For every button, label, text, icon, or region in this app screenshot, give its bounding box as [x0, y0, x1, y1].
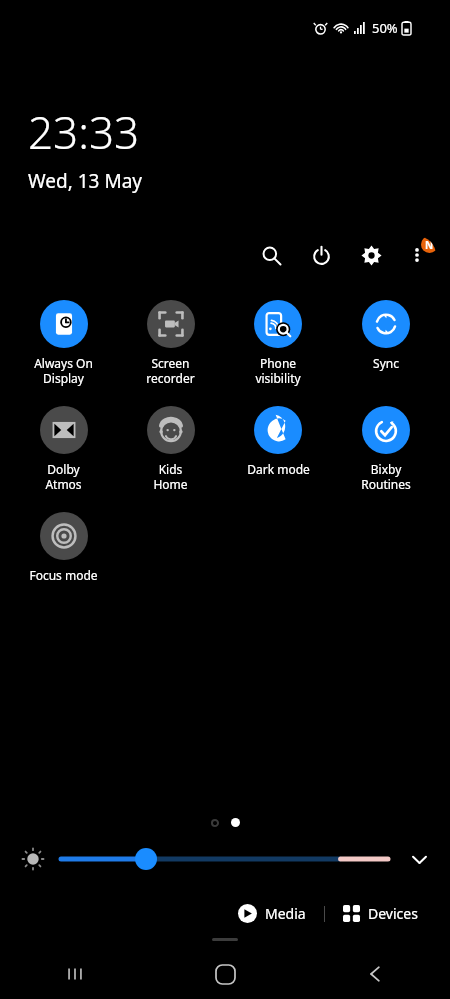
- button[interactable]: Search: [254, 238, 288, 272]
- staticText: 50%: [372, 19, 398, 37]
- button[interactable]: Focus mode: [10, 508, 117, 587]
- button[interactable]: Screen recorder: [117, 296, 224, 390]
- button[interactable]: Bixby Routines: [332, 402, 440, 496]
- button[interactable]: Phone visibility: [224, 296, 332, 390]
- staticText: Dark mode: [247, 461, 310, 477]
- staticText: Kids Home: [153, 461, 188, 492]
- button[interactable]: [61, 842, 388, 876]
- staticText: Dolby Atmos: [45, 461, 82, 492]
- staticText: Sync: [373, 355, 399, 371]
- staticText: Media: [265, 904, 306, 923]
- button[interactable]: Power: [304, 238, 338, 272]
- button[interactable]: Dolby Atmos: [10, 402, 117, 496]
- button[interactable]: Home: [150, 949, 300, 999]
- staticText: 23:33: [28, 102, 140, 162]
- staticText: Phone visibility: [255, 355, 301, 386]
- button[interactable]: Sync: [332, 296, 440, 375]
- button[interactable]: Dark mode: [224, 402, 332, 481]
- button[interactable]: Always On Display: [10, 296, 117, 390]
- staticText: N: [425, 238, 434, 252]
- button[interactable]: Media: [232, 899, 312, 928]
- button[interactable]: Recent apps: [0, 949, 150, 999]
- staticText: Focus mode: [29, 567, 98, 583]
- button[interactable]: Kids Home: [117, 402, 224, 496]
- button[interactable]: Devices: [337, 899, 424, 928]
- button[interactable]: Settings: [354, 238, 388, 272]
- staticText: Bixby Routines: [361, 461, 411, 492]
- staticText: Screen recorder: [146, 355, 195, 386]
- staticText: Wed, 13 May: [28, 168, 142, 194]
- button[interactable]: More options: [398, 236, 436, 274]
- staticText: Devices: [368, 904, 418, 923]
- staticText: Always On Display: [34, 355, 93, 386]
- button[interactable]: Back: [300, 949, 450, 999]
- button[interactable]: Expand brightness settings: [402, 842, 436, 876]
